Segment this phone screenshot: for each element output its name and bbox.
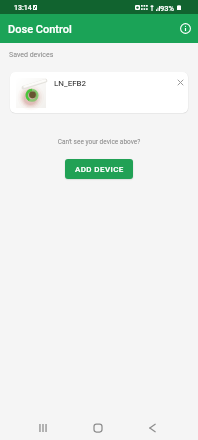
button[interactable]: Back bbox=[140, 415, 165, 440]
button[interactable]: Home bbox=[85, 415, 110, 440]
button[interactable]: Recent apps bbox=[30, 415, 55, 440]
staticText: Saved devices bbox=[9, 51, 54, 59]
button[interactable]: Info bbox=[176, 19, 194, 37]
staticText: ADD DEVICE bbox=[75, 165, 124, 174]
staticText: 93% bbox=[160, 4, 175, 13]
staticText: 13:14 bbox=[14, 4, 32, 12]
button[interactable]: ADD DEVICE bbox=[65, 159, 133, 179]
button[interactable]: Remove device bbox=[173, 75, 187, 89]
staticText: LN_EFB2 bbox=[54, 79, 87, 88]
staticText: Can't see your device above? bbox=[0, 138, 198, 146]
button[interactable]: LN_EFB2 bbox=[10, 72, 188, 113]
staticText: Dose Control bbox=[8, 23, 72, 36]
